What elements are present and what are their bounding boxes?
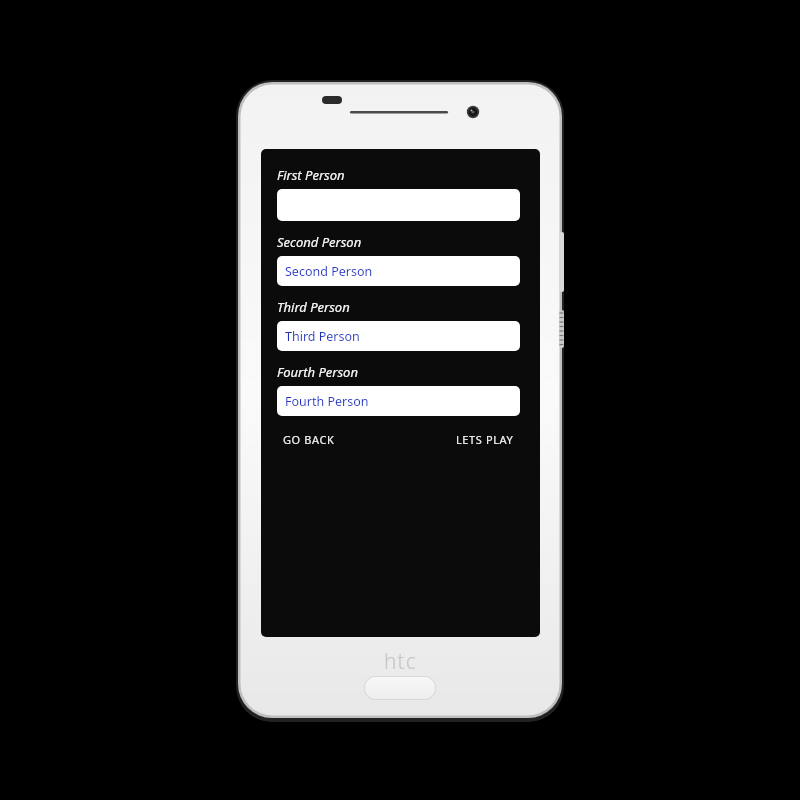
button[interactable]: GO BACK bbox=[277, 428, 341, 451]
button[interactable]: Home bbox=[364, 676, 436, 700]
button[interactable]: Fourth Person bbox=[277, 386, 520, 416]
staticText: Second Person bbox=[277, 233, 362, 251]
staticText: Third Person bbox=[285, 328, 360, 345]
staticText: htc bbox=[384, 647, 417, 676]
button[interactable]: Third Person bbox=[277, 321, 520, 351]
staticText: LETS PLAY bbox=[456, 432, 514, 447]
staticText: Fourth Person bbox=[285, 393, 369, 410]
button[interactable]: Second Person bbox=[277, 256, 520, 286]
button[interactable] bbox=[277, 189, 520, 221]
staticText: Second Person bbox=[285, 263, 373, 280]
staticText: First Person bbox=[277, 166, 345, 184]
staticText: GO BACK bbox=[283, 432, 335, 447]
staticText: Fourth Person bbox=[277, 363, 358, 381]
button[interactable]: LETS PLAY bbox=[450, 428, 520, 451]
staticText: Third Person bbox=[277, 298, 350, 316]
